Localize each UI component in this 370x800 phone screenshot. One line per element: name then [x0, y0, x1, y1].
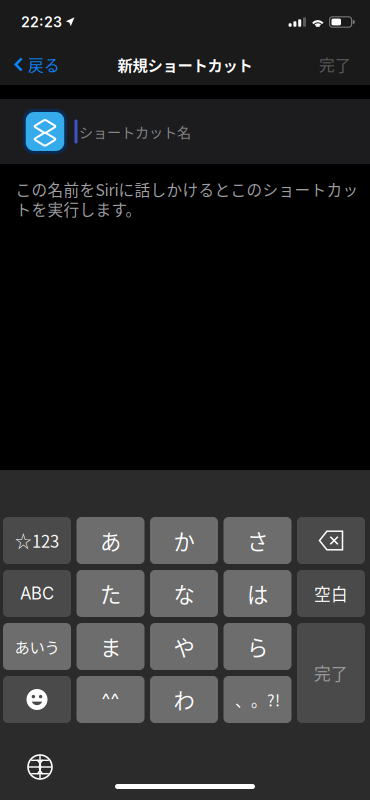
button[interactable]: ☆123 [3, 517, 71, 564]
button[interactable]: ら [223, 623, 291, 670]
staticText: ショートカット名 [79, 121, 191, 142]
button[interactable]: や [150, 623, 218, 670]
staticText: た [100, 578, 121, 609]
button[interactable]: ショートカット名 [0, 99, 370, 164]
staticText: さ [247, 525, 268, 556]
staticText: な [173, 578, 194, 609]
staticText: ま [100, 631, 121, 662]
button[interactable]: Switch keyboard [17, 746, 63, 788]
staticText: あ [100, 525, 121, 556]
button[interactable]: あいう [3, 623, 71, 670]
staticText: 、。?! [235, 688, 280, 711]
staticText: ABC [20, 583, 54, 604]
button[interactable]: Delete [297, 517, 365, 564]
button[interactable]: わ [150, 676, 218, 723]
button[interactable]: ま [76, 623, 144, 670]
button[interactable]: 戻る [5, 44, 69, 84]
staticText: や [173, 631, 194, 662]
staticText: わ [173, 684, 194, 715]
button[interactable]: 完了 [306, 44, 364, 84]
staticText: 22:23 [21, 13, 62, 30]
button[interactable]: 完了 [297, 623, 365, 723]
staticText: 完了 [319, 53, 351, 76]
staticText: か [173, 525, 194, 556]
staticText: は [247, 578, 268, 609]
staticText: 空白 [314, 581, 348, 605]
button[interactable]: 空白 [297, 570, 365, 617]
button[interactable]: た [76, 570, 144, 617]
button[interactable]: ^^ [76, 676, 144, 723]
button[interactable]: あ [76, 517, 144, 564]
staticText: 戻る [28, 53, 60, 76]
staticText: ☆123 [15, 528, 59, 552]
button[interactable]: さ [223, 517, 291, 564]
button[interactable]: Emoji [3, 676, 71, 723]
staticText: この名前をSiriに話しかけるとこのショートカッ [15, 178, 358, 201]
staticText: 完了 [314, 661, 348, 685]
staticText: ^^ [101, 688, 119, 711]
button[interactable]: 、。?! [223, 676, 291, 723]
staticText: あいう [14, 635, 59, 658]
staticText: 新規ショートカット [117, 53, 252, 76]
button[interactable]: ABC [3, 570, 71, 617]
staticText: トを実行します。 [15, 198, 141, 220]
button[interactable]: か [150, 517, 218, 564]
button[interactable]: は [223, 570, 291, 617]
button[interactable]: な [150, 570, 218, 617]
staticText: ら [247, 631, 268, 662]
